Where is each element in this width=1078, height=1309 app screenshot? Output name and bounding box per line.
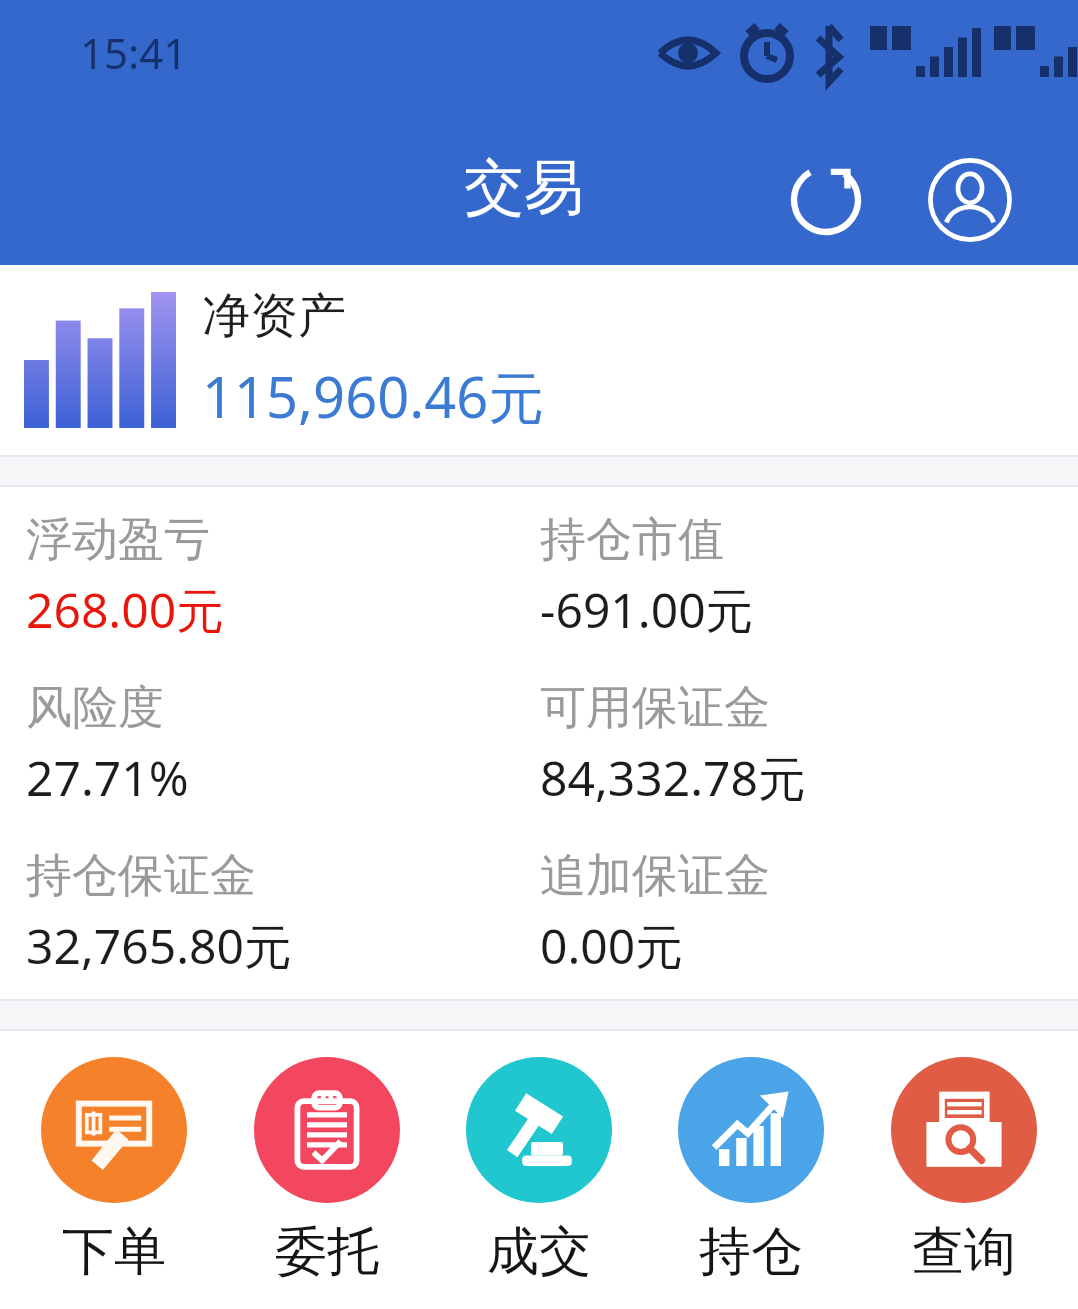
- staticText: 15:41: [80, 24, 188, 81]
- staticText: 32,765.80元: [26, 913, 292, 979]
- staticText: 净资产: [202, 286, 346, 346]
- staticText: 委托: [275, 1219, 379, 1281]
- staticText: 0.00元: [540, 913, 684, 979]
- staticText: 可用保证金: [540, 679, 770, 737]
- staticText: 268.00元: [26, 577, 225, 643]
- staticText: -691.00元: [540, 577, 754, 643]
- staticText: 27.71%: [26, 745, 189, 810]
- button[interactable]: 持仓: [653, 1057, 849, 1281]
- staticText: 成交: [487, 1219, 591, 1281]
- staticText: 持仓市值: [540, 511, 724, 569]
- staticText: 交易: [464, 150, 584, 226]
- staticText: 查询: [912, 1219, 1016, 1281]
- staticText: 浮动盈亏: [26, 511, 210, 569]
- button[interactable]: 查询: [866, 1057, 1062, 1281]
- button[interactable]: Profile: [906, 136, 1034, 264]
- staticText: 持仓: [699, 1219, 803, 1281]
- staticText: 115,960.46元: [202, 358, 545, 434]
- staticText: 追加保证金: [540, 847, 770, 905]
- staticText: 持仓保证金: [26, 847, 256, 905]
- button[interactable]: 成交: [441, 1057, 637, 1281]
- staticText: 风险度: [26, 679, 164, 737]
- button[interactable]: 委托: [229, 1057, 425, 1281]
- button[interactable]: 下单: [16, 1057, 212, 1281]
- button[interactable]: Refresh: [762, 136, 890, 264]
- staticText: 下单: [62, 1219, 166, 1281]
- staticText: 84,332.78元: [540, 745, 806, 811]
